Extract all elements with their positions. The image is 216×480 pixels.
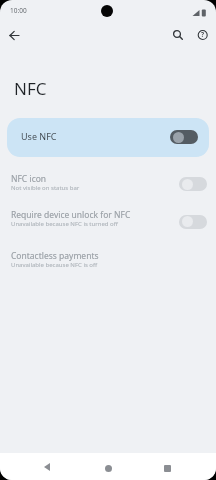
button[interactable] bbox=[5, 26, 24, 45]
button[interactable] bbox=[7, 118, 209, 157]
button[interactable] bbox=[0, 167, 216, 198]
staticText: NFC bbox=[14, 77, 47, 100]
button[interactable]: ? bbox=[194, 26, 212, 44]
staticText: Use NFC bbox=[21, 130, 57, 142]
button[interactable] bbox=[0, 205, 216, 236]
button[interactable] bbox=[0, 246, 216, 277]
staticText: Contactless payments bbox=[11, 250, 99, 262]
staticText: ? bbox=[201, 30, 205, 39]
button[interactable] bbox=[99, 459, 117, 477]
staticText: Unavailable because NFC is turned off bbox=[11, 220, 118, 228]
staticText: Not visible on status bar bbox=[11, 184, 80, 192]
staticText: 10:00 bbox=[10, 6, 27, 15]
staticText: Unavailable because NFC is off bbox=[11, 261, 98, 269]
staticText: Require device unlock for NFC bbox=[11, 209, 131, 221]
button[interactable] bbox=[38, 458, 56, 476]
button[interactable] bbox=[169, 26, 187, 44]
button[interactable] bbox=[158, 459, 176, 477]
staticText: NFC icon bbox=[11, 173, 47, 185]
